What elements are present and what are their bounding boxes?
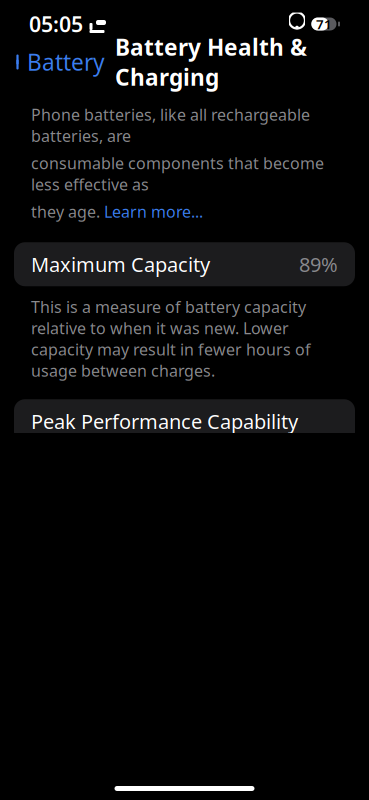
staticText: Maximum Capacity <box>31 251 210 278</box>
staticText: Learn more... <box>104 201 203 222</box>
button[interactable]: Battery <box>4 43 105 81</box>
staticText: consumable components that become less e… <box>31 152 324 195</box>
button[interactable]: Maximum Capacity <box>14 242 355 286</box>
button[interactable]: Peak Performance Capability <box>14 399 355 443</box>
staticText: 89% <box>299 251 338 278</box>
staticText: This is a measure of battery capacity re… <box>31 296 311 381</box>
staticText: Battery <box>27 47 105 77</box>
staticText: Peak Performance Capability <box>31 408 298 435</box>
staticText: Battery Health & Charging <box>115 32 307 92</box>
staticText: they age. <box>31 201 104 222</box>
staticText: Phone batteries, like all rechargeable b… <box>31 104 310 146</box>
staticText: 71 <box>316 15 332 33</box>
staticText: 05:05 <box>29 10 83 38</box>
button[interactable]: Learn more... <box>104 201 203 222</box>
